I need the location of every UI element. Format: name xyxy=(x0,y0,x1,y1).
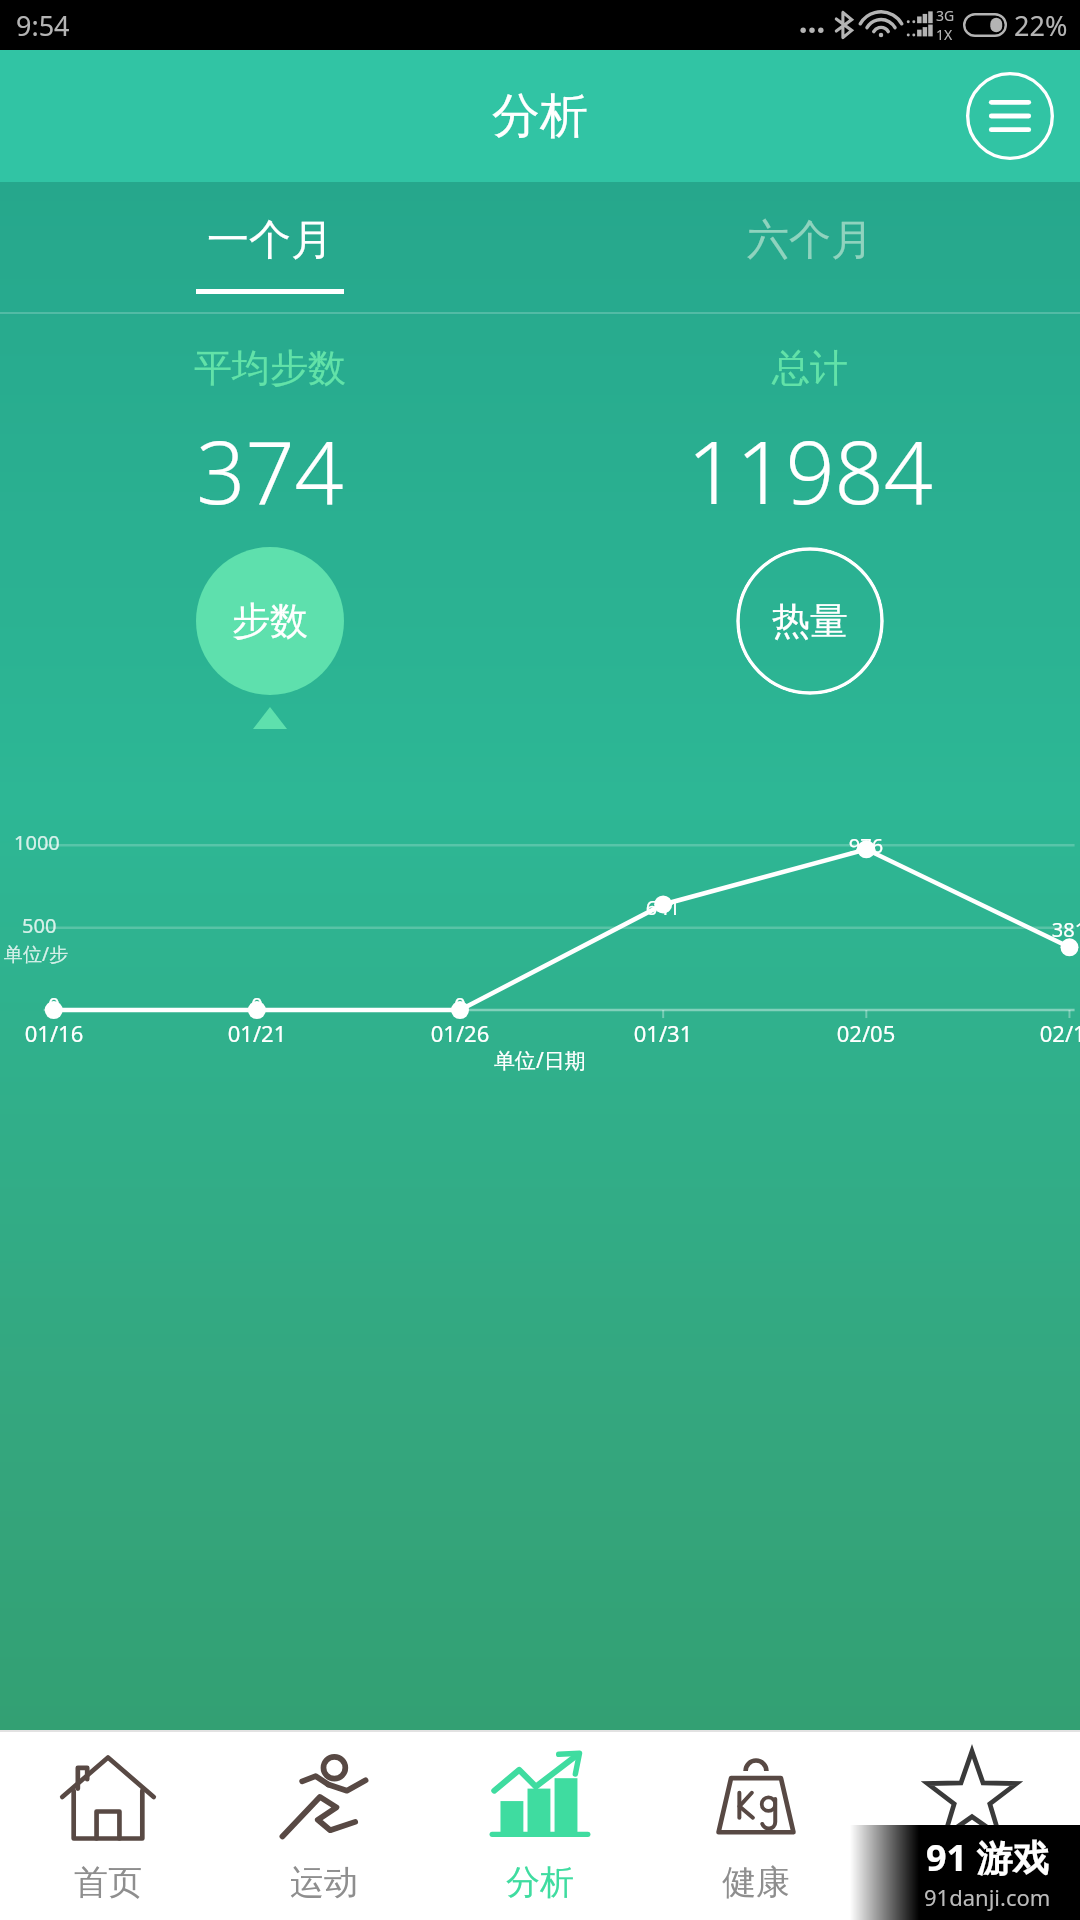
staticText: 总计 xyxy=(772,344,848,392)
button[interactable]: 健康 xyxy=(648,1730,864,1920)
staticText: 分析 xyxy=(492,86,588,146)
staticText: 9:54 xyxy=(16,7,70,44)
staticText: 381 xyxy=(1047,916,1080,943)
staticText: 六个月 xyxy=(747,214,873,267)
staticText: 首页 xyxy=(74,1861,142,1904)
button[interactable]: 首页 xyxy=(0,1730,216,1920)
staticText: 01/26 xyxy=(418,1018,502,1048)
staticText: 02/05 xyxy=(824,1018,908,1048)
staticText: 单位/日期 xyxy=(494,1046,586,1075)
button[interactable]: 热量 xyxy=(736,547,884,695)
staticText: 平均步数 xyxy=(194,344,346,392)
staticText: 运动 xyxy=(290,1861,358,1904)
staticText: 1000 xyxy=(14,829,60,856)
staticText: 一个月 xyxy=(207,214,333,267)
staticText: 0 xyxy=(32,991,76,1018)
staticText: 1X xyxy=(936,25,953,44)
staticText: 健康 xyxy=(722,1861,790,1904)
staticText: 01/31 xyxy=(621,1018,705,1048)
button[interactable]: 分析 xyxy=(432,1730,648,1920)
button[interactable]: 一个月 xyxy=(0,182,540,314)
staticText: 500 xyxy=(22,912,57,939)
staticText: 91danji.com xyxy=(924,1882,1051,1912)
button[interactable]: Menu xyxy=(962,68,1058,164)
staticText: 374 xyxy=(196,412,344,529)
staticText: 641 xyxy=(641,894,685,921)
staticText: 单位/步 xyxy=(4,941,69,967)
staticText: 步数 xyxy=(232,597,308,645)
button[interactable]: 步数 xyxy=(196,547,344,695)
staticText: 91 游戏 xyxy=(926,1833,1049,1882)
staticText: 3G xyxy=(936,6,955,25)
button[interactable]: 六个月 xyxy=(540,182,1080,314)
staticText: 11984 xyxy=(687,412,933,529)
staticText: 22% xyxy=(1014,7,1068,44)
staticText: 0 xyxy=(235,991,279,1018)
button[interactable]: Favorites xyxy=(864,1730,1080,1920)
staticText: 分析 xyxy=(506,1861,574,1904)
staticText: 01/16 xyxy=(12,1018,96,1048)
staticText: 热量 xyxy=(772,597,848,645)
staticText: 0 xyxy=(438,991,482,1018)
staticText: 01/21 xyxy=(215,1018,299,1048)
staticText: 02/10 xyxy=(1027,1018,1080,1048)
staticText: 976 xyxy=(844,832,888,859)
button[interactable]: 运动 xyxy=(216,1730,432,1920)
